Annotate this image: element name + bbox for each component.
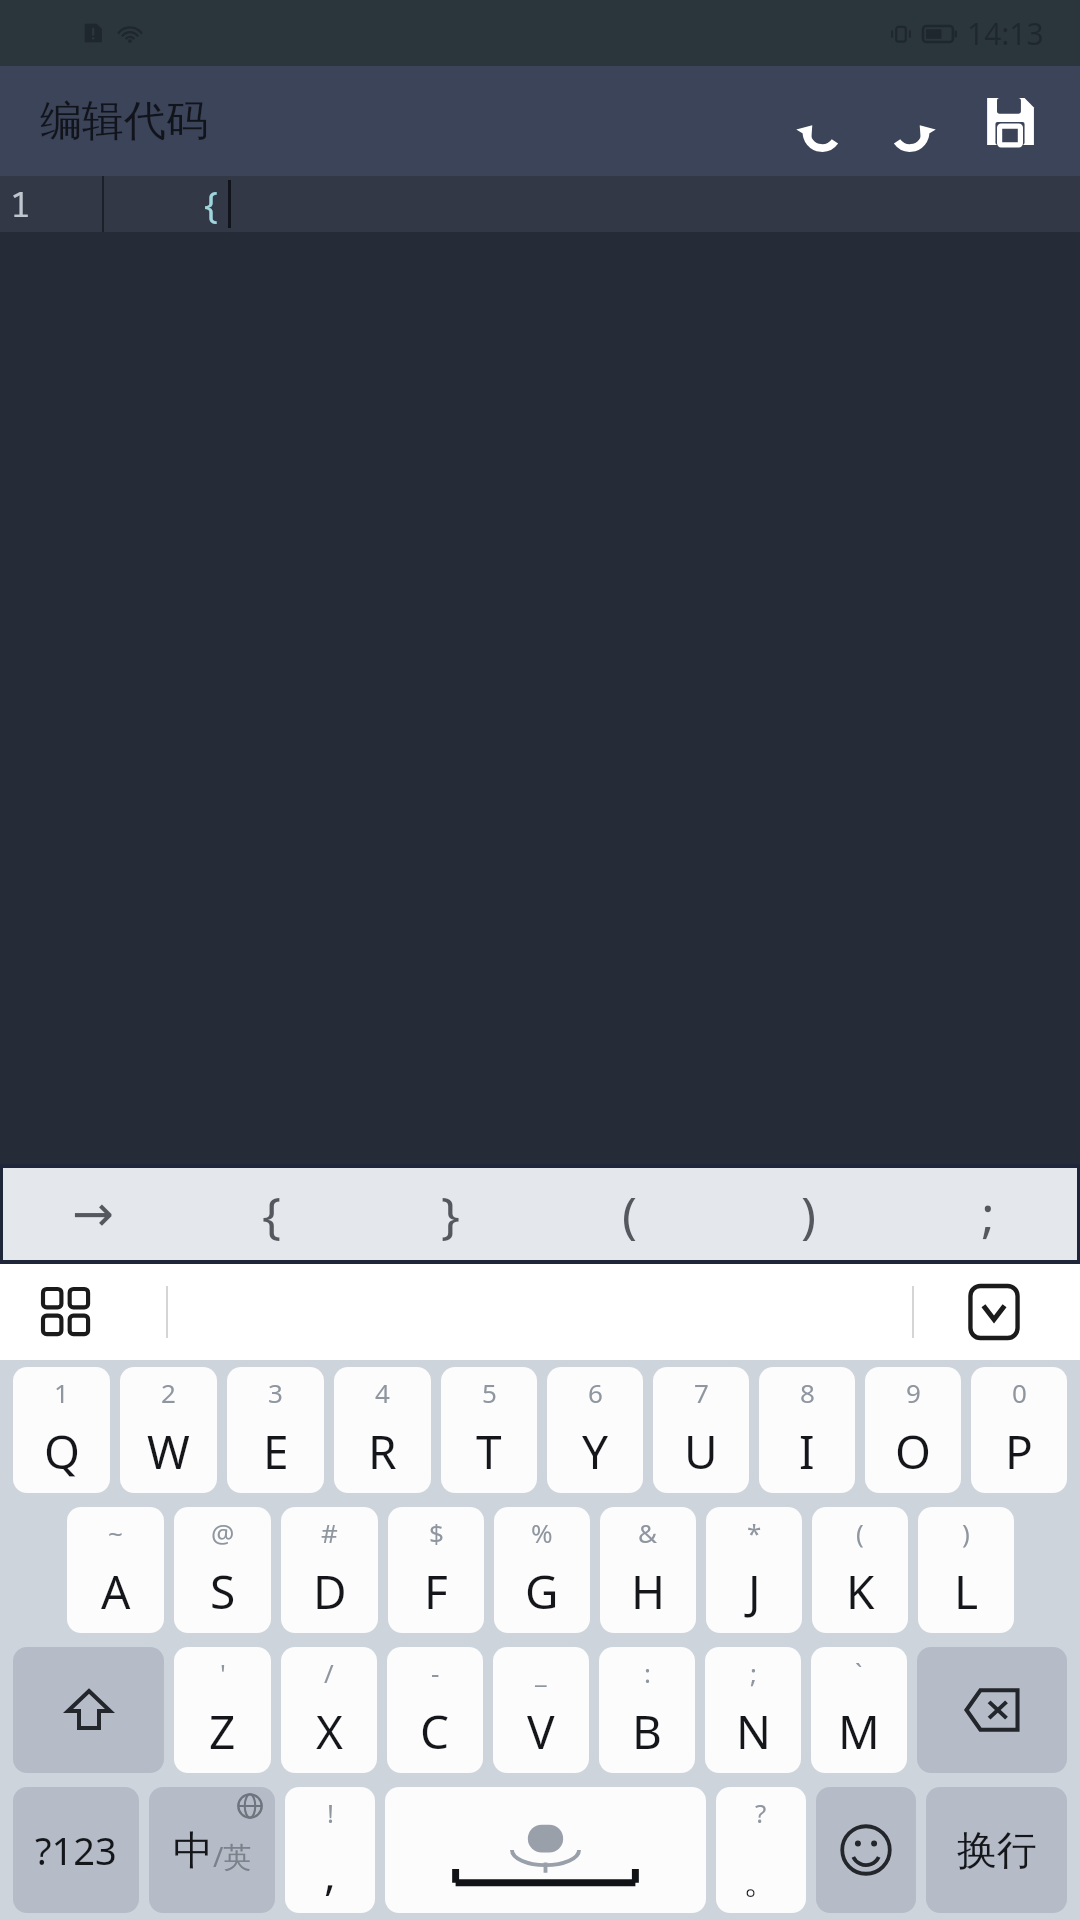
staticText: H [631, 1560, 666, 1623]
button[interactable]: 中 [149, 1787, 275, 1913]
staticText: * [747, 1515, 762, 1550]
button[interactable]: @ [174, 1507, 271, 1633]
button[interactable]: ' [174, 1647, 271, 1773]
button[interactable]: 3 [227, 1367, 324, 1493]
staticText: ) [801, 1180, 816, 1248]
staticText: 3 [268, 1375, 283, 1410]
staticText: D [313, 1560, 347, 1623]
staticText: ! [327, 1795, 334, 1830]
staticText: Y [582, 1420, 609, 1483]
button[interactable]: ` [811, 1647, 907, 1773]
button[interactable]: Shift [13, 1647, 164, 1773]
staticText: X [316, 1700, 343, 1763]
button[interactable]: : [599, 1647, 695, 1773]
button[interactable]: ( [540, 1168, 719, 1260]
staticText: V [527, 1700, 555, 1763]
button[interactable]: / [281, 1647, 377, 1773]
staticText: 换行 [957, 1825, 1037, 1875]
staticText: J [748, 1560, 761, 1623]
staticText: M [838, 1700, 880, 1763]
staticText: K [846, 1560, 875, 1623]
button[interactable]: → [3, 1168, 182, 1260]
staticText: Z [209, 1700, 236, 1763]
staticText: W [147, 1420, 190, 1483]
button[interactable]: Backspace [917, 1647, 1067, 1773]
button[interactable]: 换行 [926, 1787, 1067, 1913]
staticText: 0 [1012, 1375, 1027, 1410]
staticText: A [101, 1560, 131, 1623]
staticText: ' [220, 1655, 226, 1690]
button[interactable]: - [387, 1647, 483, 1773]
staticText: 4 [375, 1375, 390, 1410]
staticText: P [1005, 1420, 1033, 1483]
button[interactable]: Keyboard layouts [34, 1280, 98, 1344]
staticText: → [72, 1185, 114, 1243]
button[interactable]: _ [493, 1647, 589, 1773]
button[interactable]: ) [918, 1507, 1014, 1633]
staticText: ; [750, 1655, 757, 1690]
staticText: / [324, 1655, 334, 1690]
button[interactable]: # [281, 1507, 378, 1633]
button[interactable]: ! [285, 1787, 375, 1913]
button[interactable]: Redo [866, 73, 962, 169]
staticText: 1 [54, 1375, 69, 1410]
button[interactable]: Undo [770, 73, 866, 169]
button[interactable]: ? [716, 1787, 806, 1913]
staticText: - [431, 1655, 440, 1690]
staticText: { [200, 180, 222, 229]
staticText: ` [855, 1655, 863, 1690]
button[interactable]: $ [388, 1507, 484, 1633]
button[interactable]: 9 [865, 1367, 961, 1493]
staticText: 7 [694, 1375, 709, 1410]
staticText: S [210, 1560, 236, 1623]
staticText: _ [535, 1655, 547, 1690]
staticText: 1 [10, 181, 31, 227]
staticText: F [424, 1560, 448, 1623]
button[interactable]: ~ [67, 1507, 164, 1633]
staticText: G [525, 1560, 559, 1623]
staticText: 中 [173, 1825, 213, 1875]
button[interactable]: 0 [971, 1367, 1067, 1493]
button[interactable]: ( [812, 1507, 908, 1633]
staticText: ? [755, 1795, 767, 1830]
button[interactable]: ; [898, 1168, 1077, 1260]
button[interactable]: % [494, 1507, 590, 1633]
button[interactable]: & [600, 1507, 696, 1633]
staticText: ~ [108, 1515, 123, 1550]
button[interactable]: Emoji [816, 1787, 916, 1913]
button[interactable]: } [361, 1168, 540, 1260]
button[interactable]: 6 [547, 1367, 643, 1493]
button[interactable]: 2 [120, 1367, 217, 1493]
staticText: 2 [161, 1375, 176, 1410]
staticText: 8 [800, 1375, 815, 1410]
staticText: : [644, 1655, 651, 1690]
staticText: 。 [743, 1858, 779, 1903]
staticText: $ [429, 1515, 444, 1550]
button[interactable]: 4 [334, 1367, 431, 1493]
button[interactable]: Hide keyboard [956, 1274, 1032, 1350]
staticText: Q [44, 1420, 80, 1483]
button[interactable]: 1 [13, 1367, 110, 1493]
staticText: ?123 [35, 1824, 117, 1876]
button[interactable]: 5 [441, 1367, 537, 1493]
staticText: # [321, 1515, 338, 1550]
staticText: @ [211, 1515, 235, 1550]
button[interactable]: 7 [653, 1367, 749, 1493]
button[interactable]: Save [962, 73, 1058, 169]
staticText: ) [962, 1515, 970, 1550]
staticText: 6 [588, 1375, 603, 1410]
button[interactable]: { [182, 1168, 361, 1260]
button[interactable]: ?123 [13, 1787, 139, 1913]
button[interactable]: 8 [759, 1367, 855, 1493]
staticText: T [476, 1420, 502, 1483]
button[interactable]: * [706, 1507, 802, 1633]
button[interactable]: ; [705, 1647, 801, 1773]
staticText: 5 [482, 1375, 497, 1410]
button[interactable]: ) [719, 1168, 898, 1260]
staticText: ( [622, 1180, 637, 1248]
staticText: 编辑代码 [40, 95, 208, 148]
staticText: ( [856, 1515, 864, 1550]
button[interactable]: Space [385, 1787, 706, 1913]
staticText: 9 [906, 1375, 921, 1410]
button[interactable]: 1 [0, 176, 1080, 1164]
